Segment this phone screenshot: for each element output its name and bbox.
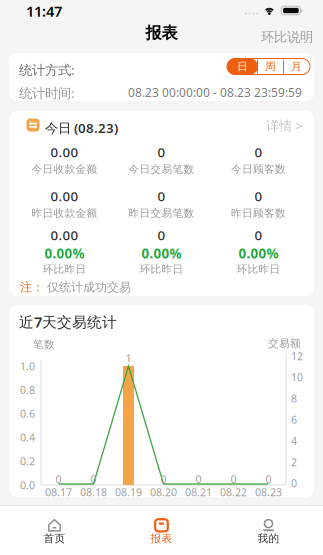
staticText: 0.4 bbox=[20, 430, 35, 444]
staticText: 环比昨日 bbox=[139, 263, 183, 276]
staticText: 6 bbox=[291, 412, 297, 427]
staticText: 我的 bbox=[257, 532, 279, 545]
staticText: 1 bbox=[125, 351, 131, 365]
staticText: 周 bbox=[265, 60, 276, 73]
staticText: 11:47 bbox=[26, 1, 62, 21]
staticText: 0.0 bbox=[20, 478, 35, 492]
staticText: 月 bbox=[291, 60, 302, 73]
staticText: 0.2 bbox=[20, 454, 35, 468]
staticText: 08.17 bbox=[45, 485, 72, 499]
staticText: 0 bbox=[157, 226, 165, 244]
staticText: 08.23 bbox=[255, 485, 282, 499]
staticText: 0 bbox=[254, 226, 262, 244]
staticText: 0 bbox=[90, 472, 96, 486]
staticText: 昨日收款金额 bbox=[31, 207, 97, 220]
staticText: 注： bbox=[20, 280, 44, 295]
button[interactable]: 详情 > bbox=[266, 117, 303, 134]
staticText: 0.00 bbox=[50, 187, 78, 205]
staticText: 0 bbox=[160, 472, 166, 486]
staticText: 今日收款金额 bbox=[31, 163, 97, 176]
button[interactable]: 我的 bbox=[215, 505, 322, 555]
staticText: 0.00% bbox=[141, 244, 181, 262]
staticText: 报表 bbox=[145, 23, 177, 43]
staticText: 0 bbox=[254, 187, 262, 205]
staticText: 08.21 bbox=[185, 485, 212, 499]
staticText: 1.0 bbox=[20, 359, 35, 373]
staticText: 今日 (08.23) bbox=[45, 119, 118, 137]
staticText: 08.23 00:00:00 - 08.23 23:59:59 bbox=[128, 84, 302, 100]
button[interactable]: 日 bbox=[227, 58, 258, 74]
staticText: 昨日顾客数 bbox=[231, 207, 286, 220]
staticText: 今日顾客数 bbox=[231, 163, 286, 176]
staticText: 详情 > bbox=[266, 117, 303, 134]
staticText: 0 bbox=[157, 187, 165, 205]
staticText: 0 bbox=[157, 143, 165, 161]
staticText: 0 bbox=[195, 472, 201, 486]
staticText: 0.00% bbox=[44, 244, 84, 262]
staticText: 10 bbox=[291, 370, 303, 384]
staticText: 昨日交易笔数 bbox=[128, 207, 194, 220]
button[interactable]: 环比说明 bbox=[261, 29, 313, 45]
staticText: 0.00 bbox=[50, 143, 78, 161]
staticText: 交易额 bbox=[268, 337, 301, 350]
staticText: 环比昨日 bbox=[236, 263, 280, 276]
staticText: 0.00% bbox=[238, 244, 278, 262]
staticText: 08.22 bbox=[220, 485, 247, 499]
staticText: 0 bbox=[254, 143, 262, 161]
staticText: 08.20 bbox=[150, 485, 177, 499]
staticText: 环比昨日 bbox=[42, 263, 86, 276]
button[interactable]: 报表 bbox=[108, 505, 215, 555]
staticText: 0 bbox=[291, 476, 297, 490]
staticText: 08.18 bbox=[80, 485, 107, 499]
button[interactable]: 周 bbox=[257, 58, 283, 74]
staticText: 统计时间: bbox=[19, 84, 75, 102]
staticText: 0 bbox=[230, 472, 236, 486]
staticText: 8 bbox=[291, 391, 297, 405]
staticText: 0.00 bbox=[50, 226, 78, 244]
button[interactable]: 月 bbox=[283, 58, 309, 74]
staticText: 报表 bbox=[150, 532, 172, 545]
staticText: 0.8 bbox=[20, 383, 35, 397]
staticText: 0.6 bbox=[20, 406, 35, 421]
staticText: 统计方式: bbox=[19, 61, 75, 79]
staticText: 仅统计成功交易 bbox=[47, 280, 131, 295]
staticText: 4 bbox=[291, 434, 297, 448]
staticText: 0 bbox=[265, 472, 271, 486]
staticText: 近7天交易统计 bbox=[19, 312, 117, 331]
button[interactable]: 首页 bbox=[1, 505, 108, 555]
staticText: 环比说明 bbox=[261, 29, 313, 45]
staticText: 日 bbox=[237, 60, 248, 73]
staticText: 笔数 bbox=[33, 338, 55, 351]
staticText: 今日交易笔数 bbox=[128, 163, 194, 176]
staticText: 08.19 bbox=[115, 485, 142, 499]
staticText: 0 bbox=[55, 472, 61, 486]
staticText: 2 bbox=[291, 455, 297, 469]
staticText: 首页 bbox=[43, 532, 65, 545]
staticText: 12 bbox=[291, 349, 303, 363]
